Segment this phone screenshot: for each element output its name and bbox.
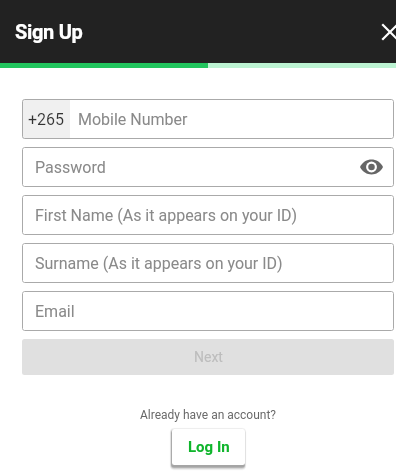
- staticText: Log In: [188, 438, 230, 456]
- button[interactable]: Close: [368, 10, 396, 54]
- staticText: Surname (As it appears on your ID): [35, 254, 283, 273]
- staticText: Already have an account?: [140, 408, 277, 422]
- button[interactable]: +265: [22, 99, 394, 139]
- button[interactable]: First Name (As it appears on your ID): [22, 195, 394, 235]
- staticText: Password: [35, 158, 106, 177]
- button[interactable]: Password: [22, 147, 394, 187]
- button[interactable]: Surname (As it appears on your ID): [22, 243, 394, 283]
- staticText: +265: [28, 110, 65, 129]
- staticText: Next: [194, 349, 223, 365]
- button[interactable]: Log In: [172, 429, 245, 465]
- staticText: First Name (As it appears on your ID): [35, 206, 298, 225]
- staticText: Email: [35, 302, 75, 321]
- button[interactable]: Email: [22, 291, 394, 331]
- button[interactable]: Show password: [357, 153, 385, 181]
- staticText: Sign Up: [15, 20, 83, 43]
- staticText: Mobile Number: [78, 110, 188, 129]
